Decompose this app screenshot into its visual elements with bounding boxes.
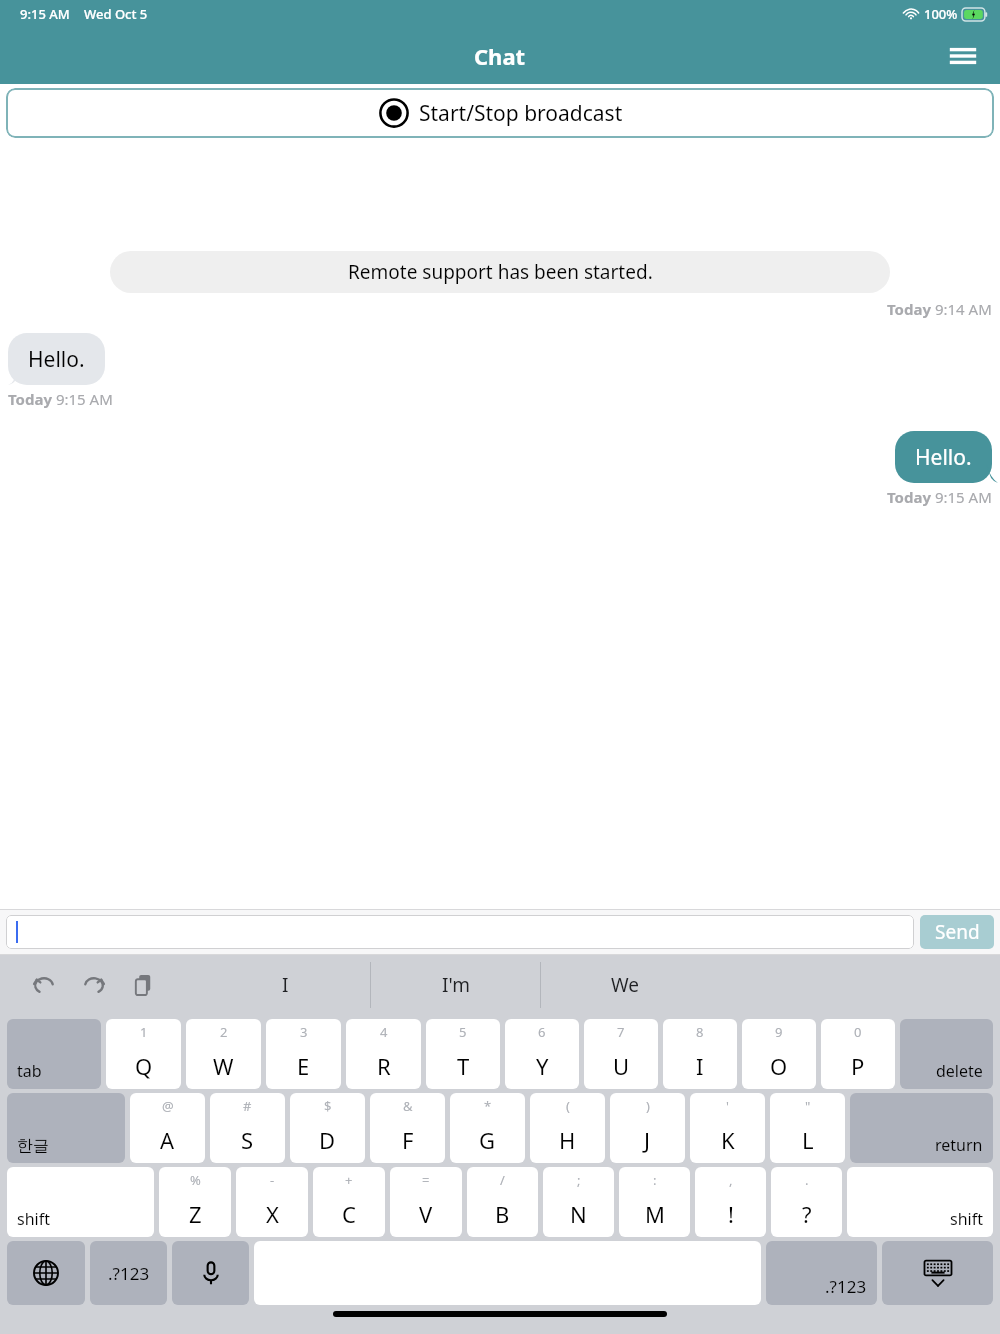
button[interactable]: Hello. [8,333,105,385]
staticText: H [559,1125,576,1155]
staticText: D [319,1125,336,1155]
button[interactable]: , [695,1167,766,1237]
button[interactable]: " [770,1093,845,1163]
staticText: Today 9:14 AM [887,299,992,319]
staticText: ( [566,1097,570,1115]
button[interactable]: Undo [26,967,62,1003]
button[interactable]: 1 [106,1019,181,1089]
staticText: . [805,1171,809,1189]
staticText: O [770,1051,788,1081]
button[interactable] [6,915,914,949]
button[interactable]: 8 [663,1019,737,1089]
staticText: % [190,1171,201,1189]
staticText: 9 [775,1023,783,1041]
button[interactable]: .?123 [766,1241,877,1305]
button[interactable]: = [390,1167,462,1237]
staticText: - [270,1171,275,1189]
button[interactable]: 9 [742,1019,816,1089]
staticText: B [495,1199,510,1229]
button[interactable]: : [619,1167,690,1237]
button[interactable]: Hello. [895,431,992,483]
button[interactable]: tab [7,1019,101,1089]
button[interactable]: + [313,1167,385,1237]
staticText: 5 [459,1023,467,1041]
staticText: We [611,972,640,998]
button[interactable]: Redo [76,967,112,1003]
staticText: 7 [617,1023,625,1041]
button[interactable]: shift [847,1167,993,1237]
button[interactable]: # [210,1093,285,1163]
button[interactable]: % [159,1167,231,1237]
staticText: tab [17,1060,42,1082]
button[interactable]: I'm [371,962,540,1008]
button[interactable]: Start/Stop broadcast [6,88,994,138]
staticText: 4 [380,1023,388,1041]
staticText: W [213,1051,234,1081]
staticText: G [479,1125,496,1155]
button[interactable]: Hide keyboard [882,1241,993,1305]
button[interactable]: ) [610,1093,685,1163]
staticText: 한글 [17,1136,49,1156]
button[interactable]: & [370,1093,445,1163]
staticText: 1 [140,1023,148,1041]
button[interactable]: @ [130,1093,205,1163]
staticText: V [419,1199,433,1229]
button[interactable]: 0 [821,1019,895,1089]
staticText: J [644,1125,651,1155]
staticText: delete [936,1060,983,1082]
button[interactable]: * [450,1093,525,1163]
button[interactable]: Change language [7,1241,85,1305]
staticText: ' [726,1097,729,1115]
button[interactable]: Send [920,915,994,949]
button[interactable]: 3 [266,1019,341,1089]
staticText: Send [935,919,980,945]
button[interactable]: shift [7,1167,154,1237]
button[interactable]: I [200,962,370,1008]
staticText: ? [802,1199,812,1229]
staticText: .?123 [108,1262,150,1285]
button[interactable]: . [771,1167,842,1237]
staticText: X [266,1199,279,1229]
button[interactable]: 한글 [7,1093,125,1163]
staticText: M [645,1199,665,1229]
button[interactable]: ' [690,1093,765,1163]
button[interactable]: 7 [584,1019,658,1089]
staticText: & [403,1097,413,1115]
button[interactable]: ( [530,1093,605,1163]
button[interactable]: / [467,1167,538,1237]
button[interactable]: .?123 [90,1241,167,1305]
button[interactable]: 5 [426,1019,500,1089]
staticText: T [457,1051,470,1081]
staticText: $ [324,1097,332,1115]
staticText: R [377,1051,391,1081]
staticText: 3 [300,1023,308,1041]
button[interactable]: delete [900,1019,993,1089]
button[interactable]: ; [543,1167,614,1237]
button[interactable]: 2 [186,1019,261,1089]
button[interactable]: 6 [505,1019,579,1089]
staticText: : [653,1171,657,1189]
staticText: 6 [538,1023,546,1041]
button[interactable]: $ [290,1093,365,1163]
staticText: Start/Stop broadcast [419,99,623,128]
button[interactable]: Dictation [172,1241,249,1305]
button[interactable]: 4 [346,1019,421,1089]
button[interactable]: We [541,962,710,1008]
button[interactable]: - [236,1167,308,1237]
staticText: Wed Oct 5 [84,5,148,23]
staticText: L [802,1125,814,1155]
staticText: N [570,1199,587,1229]
staticText: 100% [924,5,958,23]
staticText: * [484,1097,492,1115]
button[interactable]: Menu [940,33,986,79]
staticText: , [729,1171,733,1189]
button[interactable]: Paste [126,967,162,1003]
button[interactable]: return [850,1093,993,1163]
staticText: Today 9:15 AM [887,487,992,507]
staticText: shift [17,1208,50,1230]
staticText: P [851,1051,865,1081]
staticText: E [297,1051,310,1081]
staticText: I'm [442,972,470,998]
staticText: .?123 [825,1275,867,1298]
